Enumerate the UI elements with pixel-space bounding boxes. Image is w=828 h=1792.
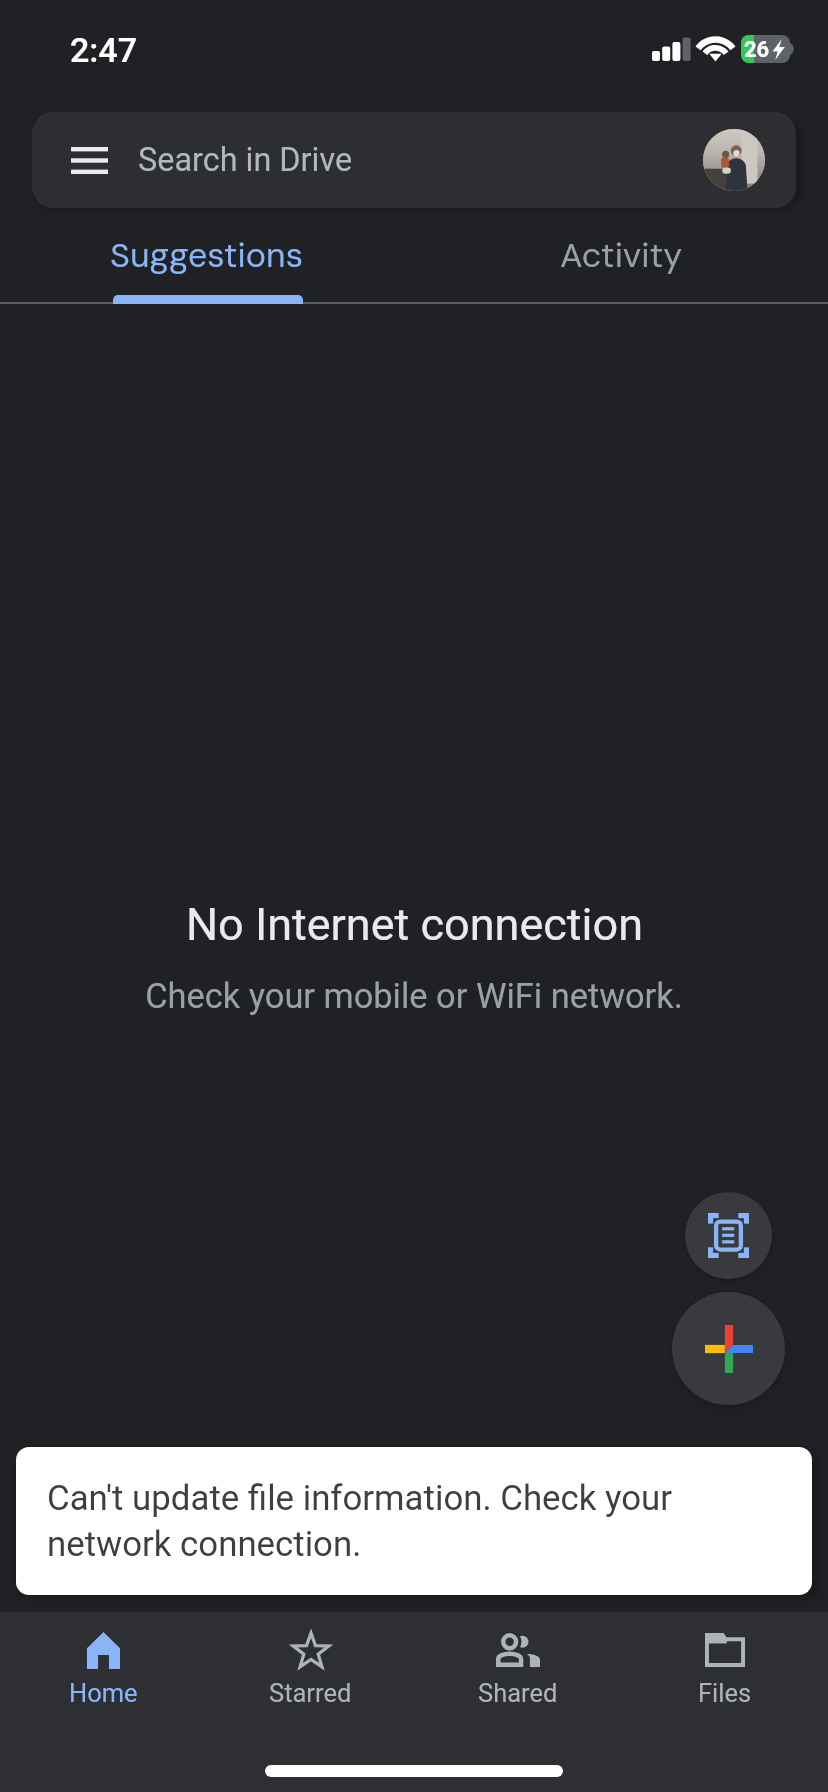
- button[interactable]: Activity: [414, 208, 828, 304]
- button[interactable]: Suggestions: [0, 208, 414, 304]
- button[interactable]: Starred: [207, 1612, 414, 1720]
- staticText: Files: [698, 1678, 752, 1708]
- button[interactable]: Can't update file information. Check you…: [16, 1447, 812, 1595]
- staticText: 26: [744, 37, 770, 63]
- staticText: Starred: [269, 1678, 352, 1708]
- button[interactable]: Show navigation drawer: [70, 140, 108, 180]
- staticText: No Internet connection: [186, 898, 643, 951]
- button[interactable]: New item: [672, 1292, 785, 1405]
- button[interactable]: Scan document: [685, 1192, 772, 1279]
- button[interactable]: Shared: [414, 1612, 621, 1720]
- staticText: 2:47: [70, 30, 137, 70]
- button[interactable]: Account and settings: [703, 129, 765, 191]
- staticText: Check your mobile or WiFi network.: [145, 976, 683, 1016]
- staticText: Can't update file information. Check you…: [47, 1478, 692, 1564]
- button[interactable]: Files: [621, 1612, 828, 1720]
- staticText: Home: [69, 1678, 138, 1708]
- button[interactable]: Show navigation drawer: [32, 112, 796, 208]
- staticText: Shared: [478, 1678, 558, 1708]
- staticText: Activity: [560, 233, 683, 277]
- staticText: Search in Drive: [138, 141, 353, 179]
- staticText: Suggestions: [110, 233, 304, 277]
- button[interactable]: Home: [0, 1612, 207, 1720]
